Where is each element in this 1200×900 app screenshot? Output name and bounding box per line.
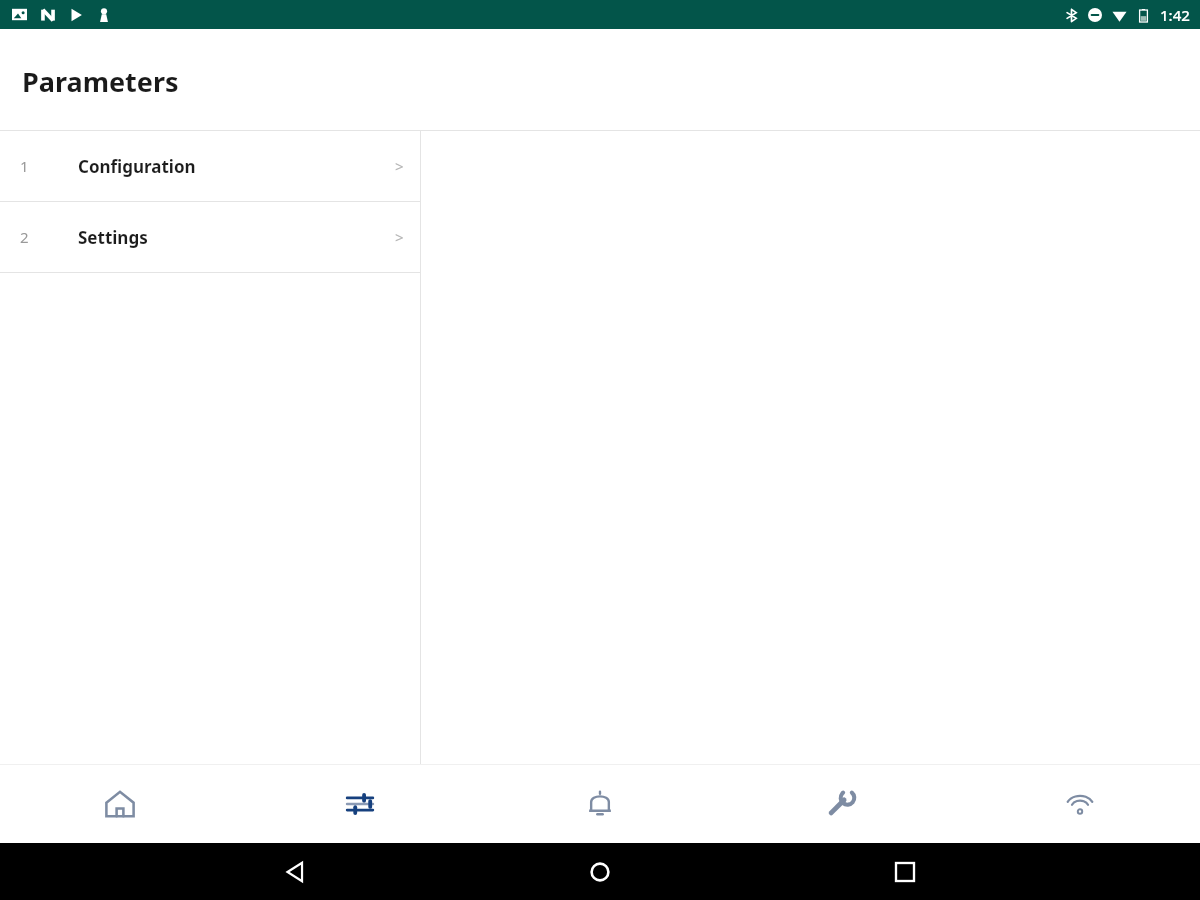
button[interactable]: Network [960, 765, 1200, 843]
button[interactable]: Tools [720, 765, 960, 843]
staticText: 1:42 [1160, 5, 1190, 25]
button[interactable]: Home [501, 843, 698, 900]
button[interactable]: Parameters [240, 765, 480, 843]
button[interactable]: Recent apps [806, 843, 1003, 900]
button[interactable]: Back [196, 843, 393, 900]
button[interactable]: 2 [0, 202, 420, 272]
staticText: Configuration [78, 155, 196, 178]
staticText: > [395, 156, 404, 176]
staticText: > [395, 227, 404, 247]
button[interactable]: Notifications [480, 765, 720, 843]
staticText: Settings [78, 226, 148, 249]
button[interactable]: Home [0, 765, 240, 843]
staticText: 1 [20, 156, 29, 176]
staticText: Parameters [22, 63, 179, 100]
button[interactable]: 1 [0, 131, 420, 201]
staticText: 2 [20, 227, 29, 247]
